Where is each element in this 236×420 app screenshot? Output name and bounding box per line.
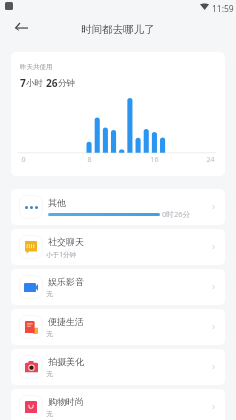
staticText: 0时26分	[162, 209, 191, 219]
button[interactable]: 其他	[11, 189, 225, 225]
staticText: 时间都去哪儿了	[81, 23, 155, 36]
staticText: 小于1分钟	[46, 250, 77, 259]
staticText: 8	[87, 155, 92, 165]
button[interactable]: 便捷生活	[11, 309, 225, 345]
staticText: 26	[46, 76, 58, 90]
staticText: 无	[46, 290, 53, 298]
staticText: 无	[46, 330, 53, 338]
staticText: 娱乐影音	[48, 276, 84, 287]
button[interactable]: 购物时尚	[11, 389, 225, 420]
staticText: 便捷生活	[48, 316, 84, 327]
staticText: 0	[21, 155, 26, 165]
staticText: 7	[20, 76, 26, 90]
staticText: 拍摄美化	[48, 356, 84, 367]
staticText: 无	[46, 410, 53, 418]
staticText: 11:59	[212, 3, 234, 15]
button[interactable]: 娱乐影音	[11, 269, 225, 305]
staticText: 其他	[48, 197, 66, 208]
button[interactable]: 社交聊天	[11, 229, 225, 265]
staticText: 昨天共使用	[20, 63, 53, 71]
button[interactable]: Back	[5, 10, 37, 42]
button[interactable]: 拍摄美化	[11, 349, 225, 385]
staticText: 16	[150, 155, 159, 165]
staticText: 社交聊天	[48, 236, 84, 247]
staticText: 24	[206, 155, 215, 165]
staticText: 购物时尚	[48, 396, 84, 407]
staticText: 无	[46, 370, 53, 378]
staticText: 小时	[26, 78, 44, 89]
staticText: 分钟	[58, 78, 76, 89]
